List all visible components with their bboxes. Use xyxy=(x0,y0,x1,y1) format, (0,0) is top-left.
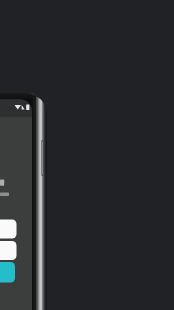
button[interactable]: Phone preview xyxy=(0,0,174,310)
